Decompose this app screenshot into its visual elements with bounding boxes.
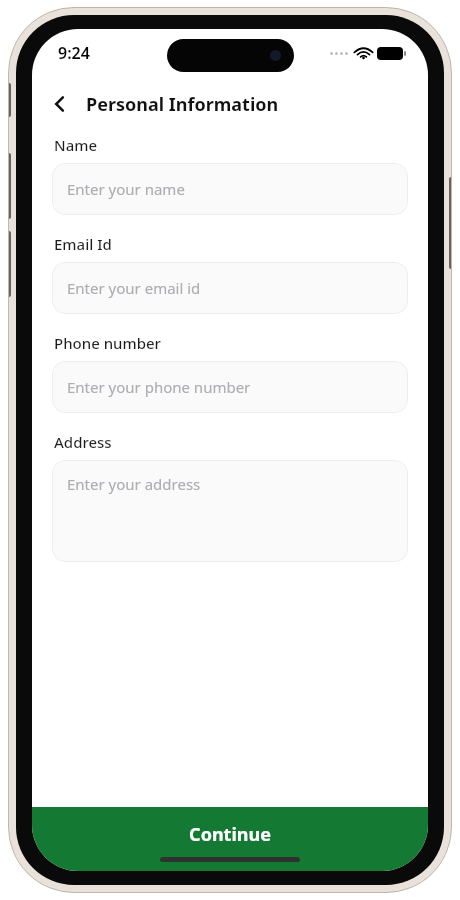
- button[interactable]: Enter your email id: [52, 262, 408, 314]
- button[interactable]: Enter your name: [52, 163, 408, 215]
- staticText: Continue: [189, 822, 271, 847]
- staticText: 9:24: [58, 42, 90, 64]
- staticText: Enter your name: [67, 179, 185, 199]
- staticText: Enter your phone number: [67, 377, 251, 397]
- button[interactable]: Enter your address: [52, 460, 408, 562]
- staticText: Name: [54, 135, 98, 155]
- staticText: Enter your address: [67, 474, 201, 494]
- staticText: Enter your email id: [67, 278, 201, 298]
- staticText: Phone number: [54, 333, 161, 353]
- button[interactable]: Enter your phone number: [52, 361, 408, 413]
- staticText: Address: [54, 432, 112, 452]
- button[interactable]: Back: [42, 87, 78, 121]
- button[interactable]: Continue: [32, 807, 428, 871]
- staticText: Email Id: [54, 234, 112, 254]
- staticText: Personal Information: [86, 92, 279, 117]
